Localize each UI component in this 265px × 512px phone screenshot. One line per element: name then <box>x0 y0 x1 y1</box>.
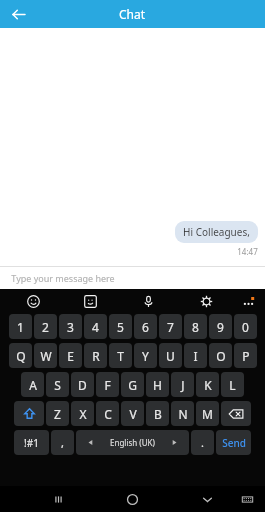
button[interactable]: E <box>59 343 82 368</box>
staticText: F <box>104 377 111 393</box>
button[interactable]: 2 <box>34 314 57 339</box>
button[interactable]: Space <box>76 430 189 455</box>
button[interactable]: Recent apps <box>47 488 69 510</box>
button[interactable]: Q <box>9 343 32 368</box>
button[interactable]: 3 <box>59 314 82 339</box>
staticText: C <box>104 406 112 422</box>
button[interactable]: , <box>51 430 74 455</box>
staticText: B <box>154 406 162 422</box>
staticText: 0 <box>242 319 249 335</box>
button[interactable]: O <box>209 343 232 368</box>
staticText: G <box>128 377 137 393</box>
staticText: 8 <box>192 319 199 335</box>
staticText: I <box>193 348 198 364</box>
button[interactable]: P <box>234 343 257 368</box>
staticText: U <box>166 348 175 364</box>
button[interactable]: Voice input <box>137 290 159 312</box>
staticText: Type your message here <box>11 272 115 284</box>
staticText: D <box>78 377 87 393</box>
staticText: Chat <box>119 6 146 22</box>
button[interactable]: Emoji <box>22 290 44 312</box>
staticText: Q <box>16 348 26 364</box>
button[interactable]: R <box>84 343 107 368</box>
staticText: V <box>129 406 137 422</box>
staticText: S <box>54 377 61 393</box>
staticText: English (UK) <box>110 437 155 448</box>
staticText: 3 <box>67 319 74 335</box>
staticText: W <box>40 348 52 364</box>
button[interactable]: M <box>196 401 219 426</box>
staticText: Send <box>222 436 246 450</box>
staticText: . <box>201 435 204 450</box>
button[interactable]: U <box>159 343 182 368</box>
button[interactable]: 8 <box>184 314 207 339</box>
button[interactable]: 9 <box>209 314 232 339</box>
button[interactable]: Z <box>46 401 69 426</box>
button[interactable]: !#1 <box>14 430 49 455</box>
button[interactable]: G <box>121 372 144 397</box>
button[interactable]: J <box>171 372 194 397</box>
staticText: M <box>202 406 213 422</box>
button[interactable]: V <box>121 401 144 426</box>
button[interactable]: 5 <box>109 314 132 339</box>
staticText: E <box>67 348 74 364</box>
staticText: L <box>229 377 236 393</box>
button[interactable]: X <box>71 401 94 426</box>
button[interactable]: 0 <box>234 314 257 339</box>
button[interactable]: C <box>96 401 119 426</box>
button[interactable]: Switch keyboard <box>236 488 258 510</box>
staticText: 1 <box>17 319 24 335</box>
staticText: T <box>117 348 124 364</box>
button[interactable]: Stickers <box>79 290 101 312</box>
staticText: 4 <box>92 319 99 335</box>
button[interactable]: Keyboard settings <box>195 290 217 312</box>
staticText: 6 <box>142 319 149 335</box>
staticText: N <box>178 406 188 422</box>
staticText: 14:47 <box>237 246 258 257</box>
button[interactable]: Type your message here <box>0 266 265 289</box>
button[interactable]: K <box>196 372 219 397</box>
button[interactable]: . <box>191 430 214 455</box>
staticText: R <box>92 348 100 364</box>
button[interactable]: S <box>46 372 69 397</box>
staticText: !#1 <box>24 436 39 450</box>
button[interactable]: Shift <box>14 401 44 426</box>
button[interactable]: T <box>109 343 132 368</box>
staticText: 2 <box>42 319 49 335</box>
button[interactable]: 4 <box>84 314 107 339</box>
staticText: H <box>153 377 162 393</box>
button[interactable]: More options <box>237 290 259 312</box>
button[interactable]: 7 <box>159 314 182 339</box>
staticText: Hi Colleagues, <box>183 225 250 239</box>
button[interactable]: N <box>171 401 194 426</box>
staticText: , <box>61 435 64 450</box>
staticText: A <box>29 377 37 393</box>
button[interactable]: H <box>146 372 169 397</box>
button[interactable]: 6 <box>134 314 157 339</box>
button[interactable]: Send <box>216 430 251 455</box>
staticText: 5 <box>117 319 124 335</box>
staticText: X <box>79 406 87 422</box>
staticText: Z <box>54 406 61 422</box>
staticText: J <box>181 377 185 393</box>
button[interactable]: A <box>21 372 44 397</box>
button[interactable]: Hide keyboard <box>196 488 218 510</box>
staticText: 9 <box>217 319 224 335</box>
button[interactable]: 1 <box>9 314 32 339</box>
button[interactable]: B <box>146 401 169 426</box>
button[interactable]: F <box>96 372 119 397</box>
staticText: 7 <box>167 319 174 335</box>
staticText: P <box>242 348 250 364</box>
button[interactable]: W <box>34 343 57 368</box>
button[interactable]: Home <box>121 488 143 510</box>
button[interactable]: Y <box>134 343 157 368</box>
button[interactable]: Backspace <box>221 401 251 426</box>
staticText: O <box>216 348 226 364</box>
staticText: Y <box>142 348 149 364</box>
button[interactable]: L <box>221 372 244 397</box>
button[interactable]: D <box>71 372 94 397</box>
button[interactable]: Hi Colleagues, <box>175 221 258 243</box>
button[interactable]: I <box>184 343 207 368</box>
staticText: K <box>204 377 212 393</box>
button[interactable]: Back <box>7 3 29 25</box>
